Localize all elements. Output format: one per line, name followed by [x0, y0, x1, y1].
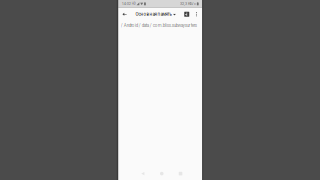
- button[interactable]: Основная память: [134, 7, 177, 21]
- staticText: HD: [132, 2, 136, 6]
- staticText: Основная память: [135, 12, 171, 17]
- button[interactable]: Back: [118, 7, 130, 21]
- button[interactable]: Change view: [181, 7, 192, 21]
- staticText: / Android / data / com.bliss.subwaysurfe…: [121, 23, 197, 28]
- button[interactable]: Recents: [173, 167, 189, 180]
- staticText: 14:02: [122, 1, 131, 6]
- staticText: 32,3 КБ/с: [180, 1, 196, 6]
- button[interactable]: More options: [192, 7, 201, 21]
- button[interactable]: / Android / data / com.bliss.subwaysurfe…: [121, 21, 197, 30]
- button[interactable]: Home: [154, 167, 170, 180]
